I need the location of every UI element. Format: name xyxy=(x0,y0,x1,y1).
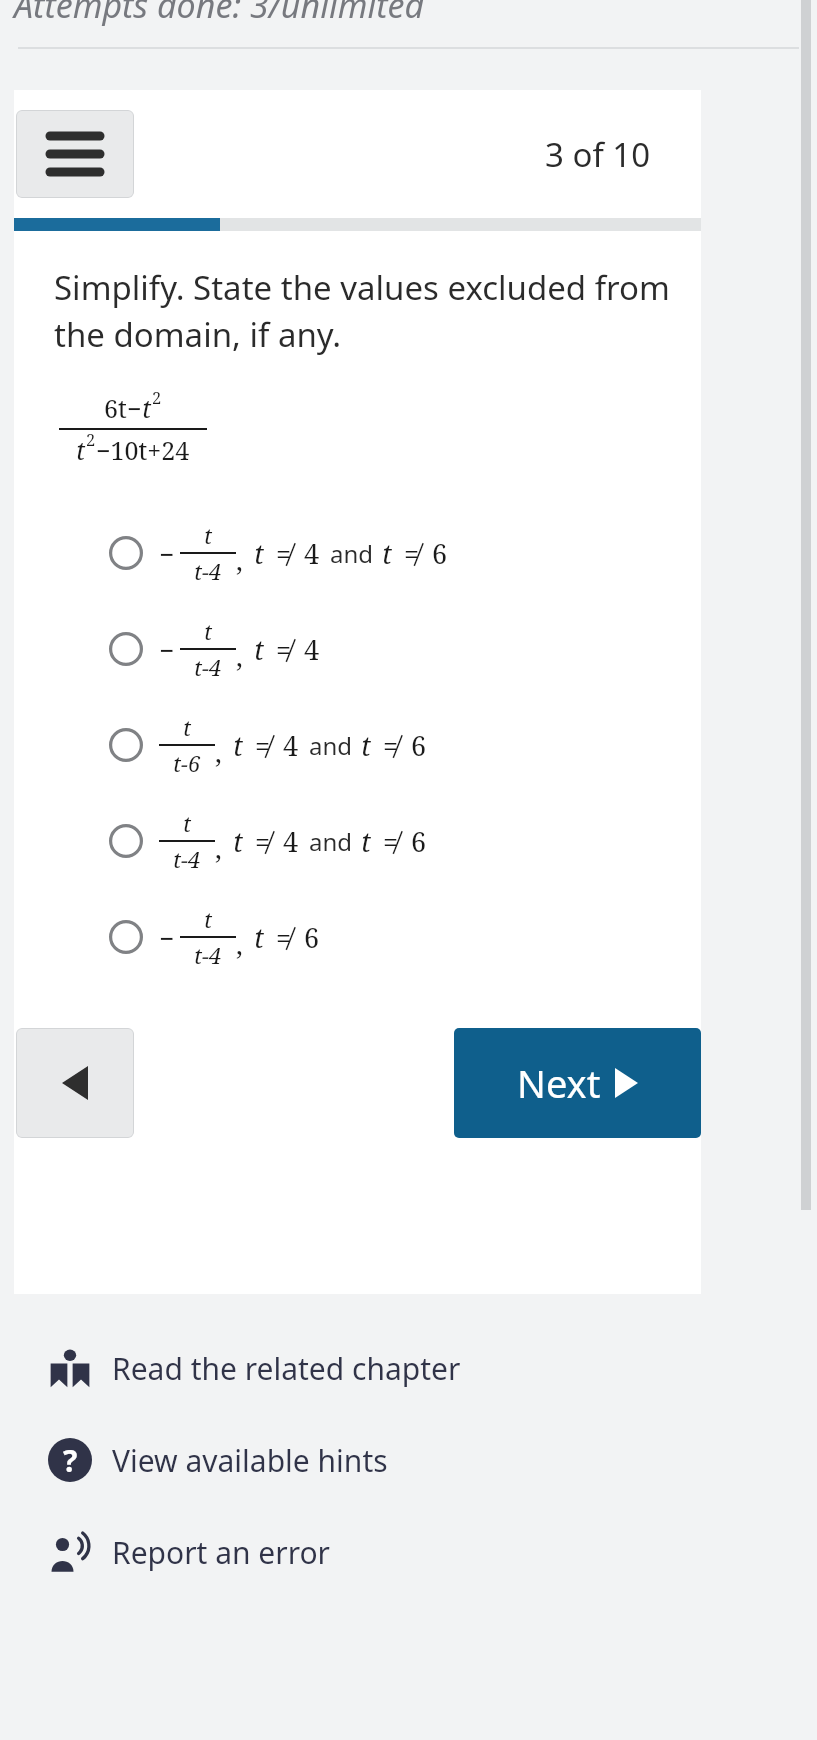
staticText: 6 xyxy=(304,919,320,956)
staticText: , xyxy=(236,926,243,963)
staticText: Next xyxy=(517,1057,601,1109)
staticText: 2 xyxy=(152,386,162,408)
staticText: Attempts done: 3/unlimited xyxy=(14,0,425,28)
staticText: Simplify. State the values excluded from… xyxy=(54,265,677,357)
staticText: 6 xyxy=(411,727,427,764)
staticText: t−4 xyxy=(194,940,222,970)
staticText: t xyxy=(361,823,371,860)
staticText: t xyxy=(204,520,213,550)
staticText: Report an error xyxy=(112,1532,331,1573)
staticText: t xyxy=(76,433,86,467)
staticText: 3 of 10 xyxy=(545,132,651,177)
staticText: −10t+24 xyxy=(96,433,190,467)
button[interactable]: Menu xyxy=(16,110,134,198)
staticText: t xyxy=(142,391,152,425)
button[interactable]: Book xyxy=(0,1322,817,1414)
button[interactable]: − xyxy=(14,601,701,697)
staticText: t xyxy=(233,823,243,860)
staticText: t xyxy=(204,904,213,934)
staticText: 6 xyxy=(411,823,427,860)
staticText: t−4 xyxy=(194,556,222,586)
button[interactable]: Next xyxy=(454,1028,701,1138)
staticText: − xyxy=(127,391,142,425)
staticText: t xyxy=(254,631,264,668)
staticText: and xyxy=(309,825,353,858)
button[interactable]: Report an error xyxy=(0,1506,817,1598)
staticText: t xyxy=(183,808,192,838)
staticText: t xyxy=(361,727,371,764)
staticText: , xyxy=(215,830,222,867)
staticText: Read the related chapter xyxy=(112,1348,461,1389)
staticText: t xyxy=(254,919,264,956)
staticText: 4 xyxy=(283,823,299,860)
staticText: ≠ xyxy=(404,535,420,572)
staticText: 6 xyxy=(432,535,448,572)
staticText: 4 xyxy=(304,631,320,668)
staticText: − xyxy=(159,632,175,667)
staticText: t−6 xyxy=(173,748,201,778)
staticText: , xyxy=(215,734,222,771)
staticText: 4 xyxy=(283,727,299,764)
button[interactable]: Previous xyxy=(16,1028,134,1138)
staticText: t−4 xyxy=(173,844,201,874)
staticText: and xyxy=(309,729,353,762)
staticText: t xyxy=(204,616,213,646)
staticText: ≠ xyxy=(383,823,399,860)
staticText: ≠ xyxy=(255,727,271,764)
staticText: ≠ xyxy=(276,535,292,572)
staticText: ? xyxy=(63,1440,78,1481)
button[interactable]: t xyxy=(14,697,701,793)
staticText: View available hints xyxy=(112,1440,388,1481)
staticText: t xyxy=(254,535,264,572)
staticText: ≠ xyxy=(255,823,271,860)
staticText: t xyxy=(382,535,392,572)
staticText: t−4 xyxy=(194,652,222,682)
staticText: − xyxy=(159,536,175,571)
button[interactable]: − xyxy=(14,505,701,601)
staticText: ≠ xyxy=(276,631,292,668)
button[interactable]: − xyxy=(14,889,701,985)
staticText: ≠ xyxy=(383,727,399,764)
staticText: t xyxy=(183,712,192,742)
staticText: 6t xyxy=(104,391,127,425)
staticText: t xyxy=(233,727,243,764)
staticText: and xyxy=(330,537,374,570)
staticText: , xyxy=(236,638,243,675)
button[interactable]: t xyxy=(14,793,701,889)
button[interactable]: Hints xyxy=(0,1414,817,1506)
staticText: 4 xyxy=(304,535,320,572)
other: Book xyxy=(48,1346,92,1390)
staticText: ≠ xyxy=(276,919,292,956)
other: Report an error xyxy=(48,1530,92,1574)
staticText: 2 xyxy=(86,428,96,450)
staticText: , xyxy=(236,542,243,579)
staticText: − xyxy=(159,920,175,955)
other: Hints xyxy=(48,1438,92,1482)
